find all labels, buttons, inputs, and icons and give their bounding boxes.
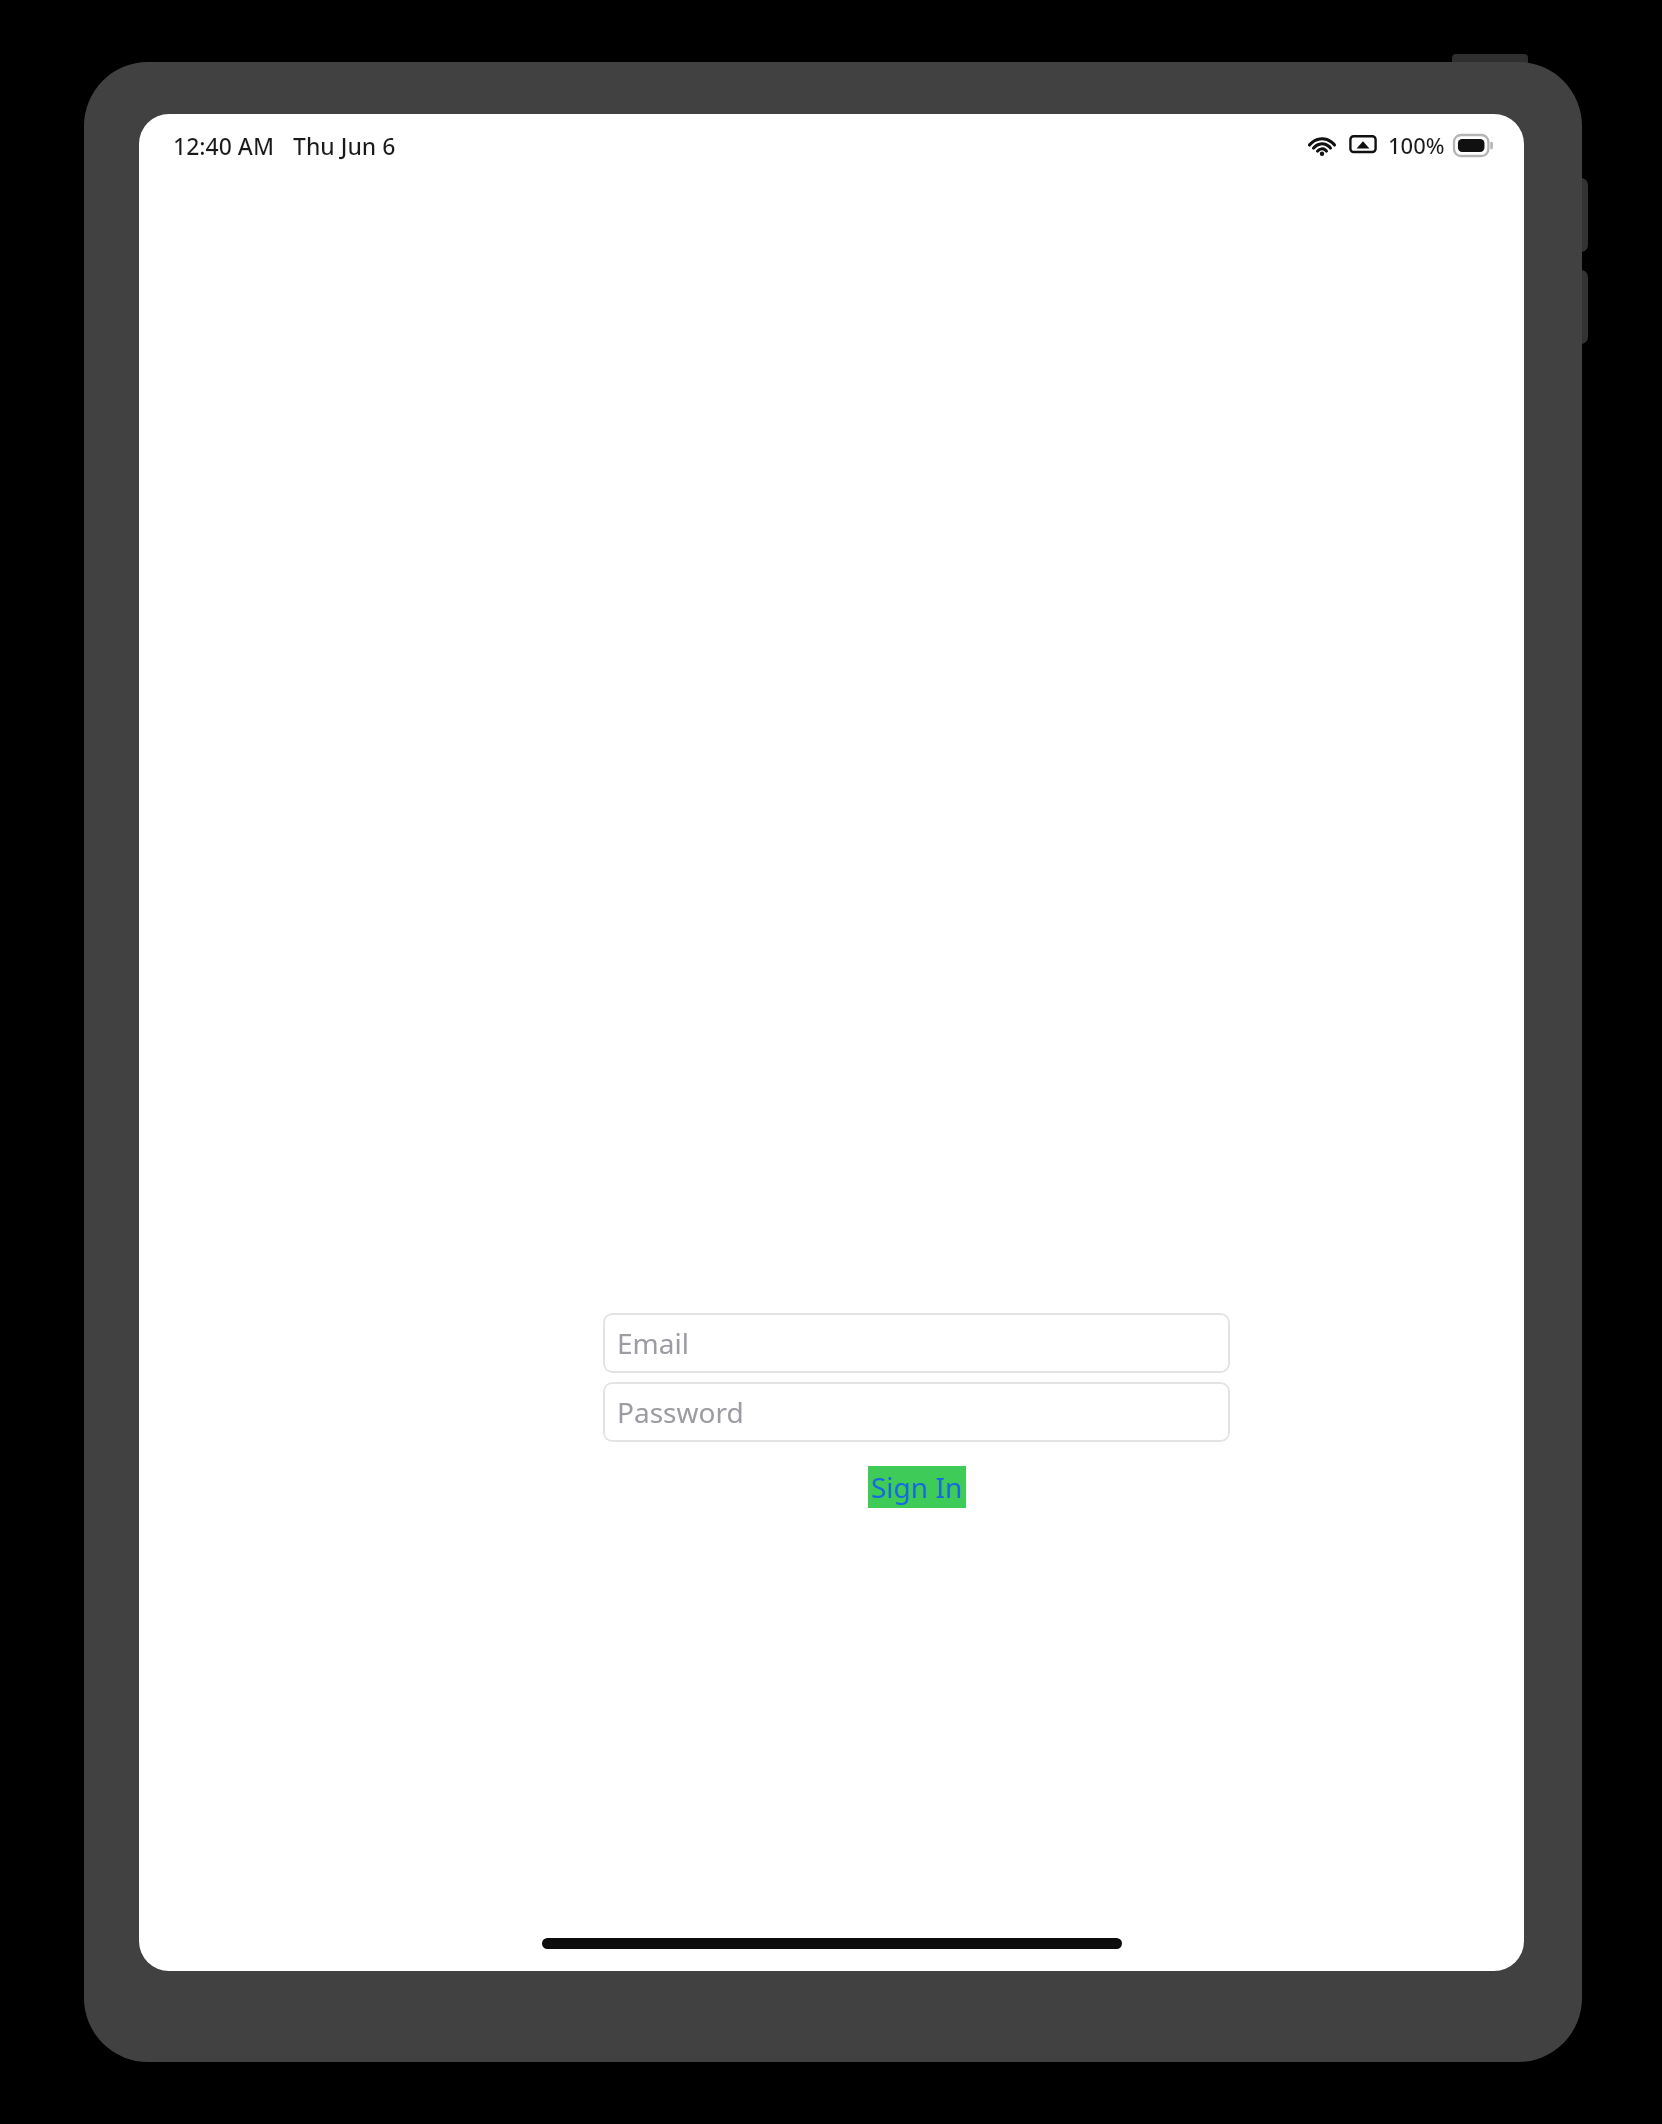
button[interactable]: Sign In — [868, 1466, 966, 1508]
staticText: Password — [617, 1393, 744, 1431]
staticText: Sign In — [871, 1468, 963, 1506]
staticText: 12:40 AM — [173, 130, 275, 161]
other: Wi-Fi — [1308, 134, 1336, 156]
other: Screen mirroring — [1349, 134, 1377, 156]
button[interactable]: Password — [603, 1382, 1230, 1442]
staticText: 100% — [1388, 130, 1445, 160]
button[interactable]: Email — [603, 1313, 1230, 1373]
staticText: Thu Jun 6 — [293, 130, 396, 161]
other: Battery full — [1454, 135, 1494, 156]
staticText: Email — [617, 1324, 689, 1362]
